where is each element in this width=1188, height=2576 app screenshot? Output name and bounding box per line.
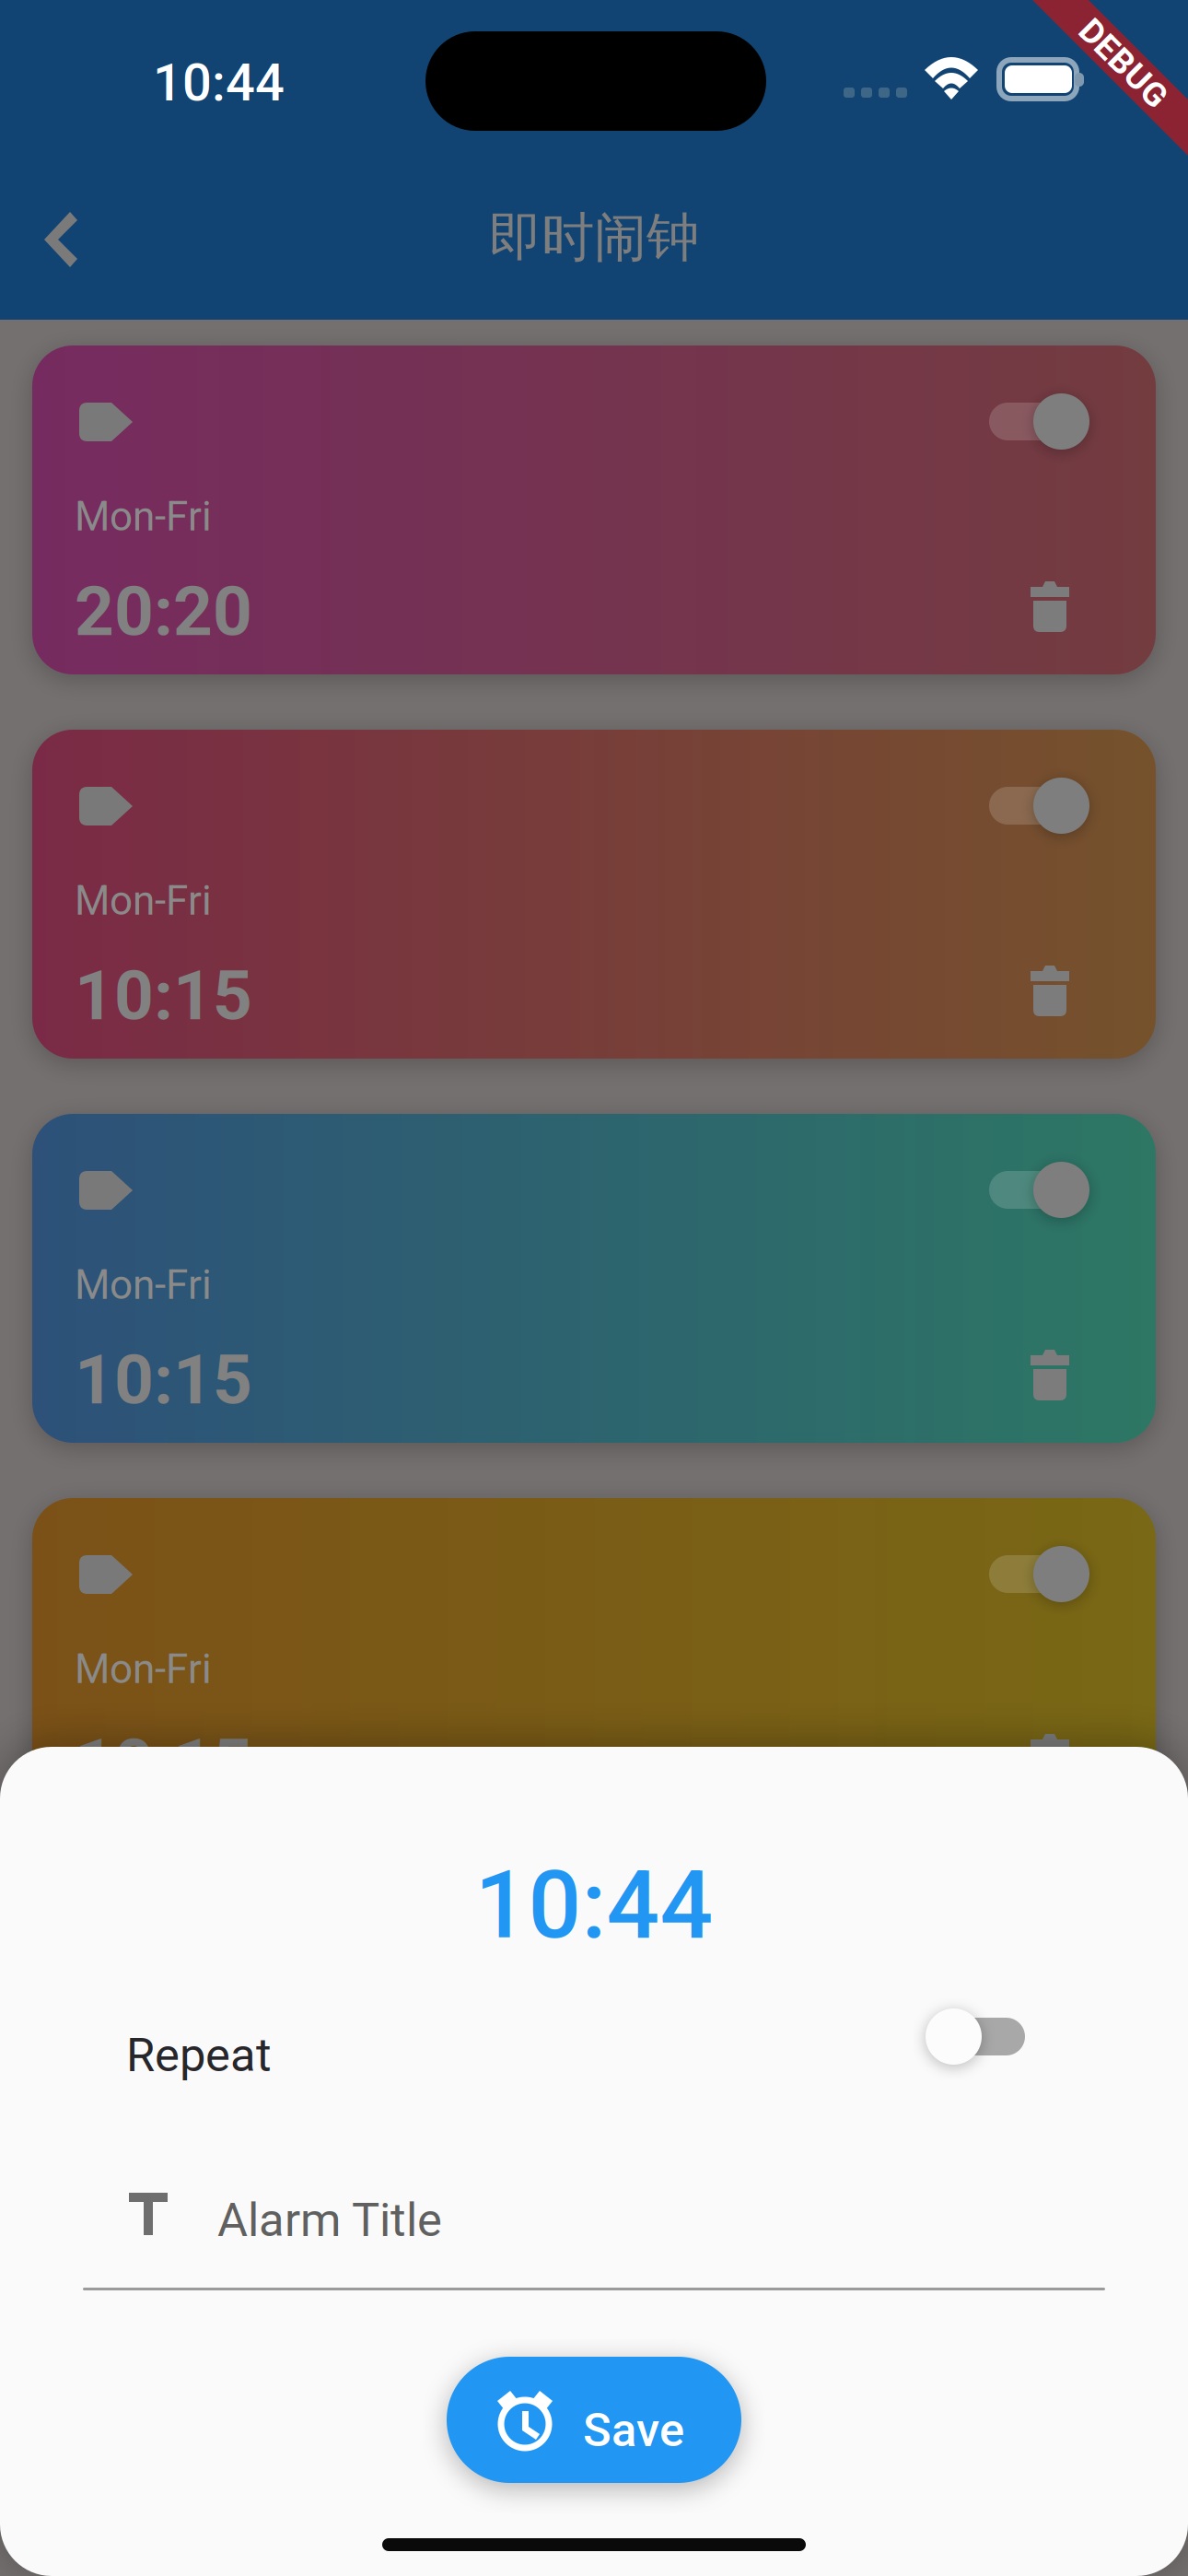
button[interactable]: Repeat <box>83 1990 1105 2091</box>
button[interactable]: Mon-Fri <box>32 1498 1156 1827</box>
staticText: 10:15 <box>75 1724 252 1804</box>
staticText: DEBUG <box>1069 43 1178 83</box>
staticText: Repeat <box>126 2028 272 2083</box>
staticText: Mon-Fri <box>75 493 212 540</box>
button[interactable]: Mon-Fri <box>32 730 1156 1059</box>
staticText: 20:20 <box>75 571 252 652</box>
staticText: 即时闹钟 <box>489 204 699 271</box>
button[interactable]: Mon-Fri <box>32 1114 1156 1443</box>
button[interactable]: Back <box>17 184 105 295</box>
button[interactable]: Mon-Fri <box>32 345 1156 674</box>
button[interactable]: Save <box>447 2357 741 2483</box>
staticText: Mon-Fri <box>75 1645 212 1693</box>
staticText: Save <box>583 2403 684 2458</box>
staticText: Mon-Fri <box>75 877 212 925</box>
staticText: 10:15 <box>75 955 252 1036</box>
staticText: 10:44 <box>153 53 285 113</box>
button[interactable]: Alarm Title <box>83 2193 1105 2322</box>
staticText: Mon-Fri <box>75 1261 212 1309</box>
staticText: Alarm Title <box>217 2193 442 2247</box>
staticText: 10:44 <box>475 1851 713 1960</box>
staticText: 10:15 <box>75 1340 252 1420</box>
